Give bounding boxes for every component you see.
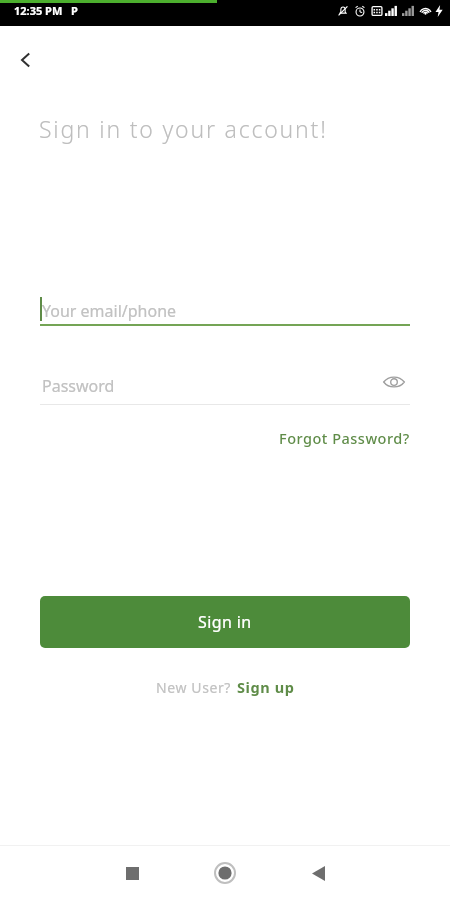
staticText: Sign in xyxy=(198,611,252,633)
staticText: 12:35 PM xyxy=(14,3,63,18)
staticText: Sign in to your account! xyxy=(39,113,328,144)
button[interactable]: Recents xyxy=(110,851,154,895)
button[interactable]: Back xyxy=(4,38,48,82)
button[interactable]: Sign up xyxy=(237,677,295,697)
button[interactable]: Sign in xyxy=(40,596,410,648)
button[interactable]: Password xyxy=(40,365,410,405)
button[interactable]: Forgot Password? xyxy=(235,424,410,452)
button[interactable]: Your email/phone xyxy=(40,290,410,326)
staticText: P xyxy=(71,3,78,18)
button[interactable]: Show password xyxy=(378,366,410,398)
button[interactable]: Home xyxy=(203,851,247,895)
staticText: Sign up xyxy=(237,677,295,697)
staticText: Your email/phone xyxy=(42,300,177,322)
button[interactable]: Back xyxy=(296,851,340,895)
staticText: New User? xyxy=(156,678,231,697)
staticText: Password xyxy=(42,375,115,397)
staticText: Forgot Password? xyxy=(279,428,410,448)
